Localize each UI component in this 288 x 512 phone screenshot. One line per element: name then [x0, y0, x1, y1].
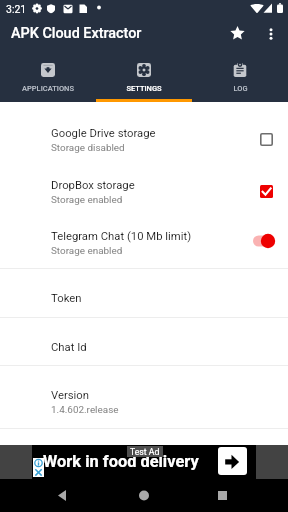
button[interactable]: Recents [208, 479, 236, 512]
staticText: Version [51, 389, 90, 402]
staticText: APPLICATIONS [22, 84, 74, 93]
button[interactable]: Telegram Chat (10 Mb limit) [0, 205, 288, 268]
button[interactable]: Google Drive storage [0, 102, 288, 154]
staticText: Telegram Chat (10 Mb limit) [51, 230, 192, 243]
staticText: SETTINGS [126, 84, 162, 93]
button[interactable]: More options [258, 21, 284, 47]
button[interactable]: APPLICATIONS [0, 52, 96, 102]
staticText: Test Ad [130, 447, 160, 457]
button[interactable]: DropBox storage [0, 154, 288, 205]
button[interactable]: Enabled [253, 178, 279, 204]
button[interactable]: LOG [192, 52, 288, 102]
staticText: Storage enabled [51, 245, 123, 257]
button[interactable]: Back [52, 479, 80, 512]
staticText: Work in food delivery [43, 452, 199, 471]
button[interactable]: Work in food delivery advertisement [32, 445, 256, 479]
button[interactable]: Open ad [218, 447, 247, 475]
staticText: Token [51, 292, 82, 305]
button[interactable]: Chat Id [0, 318, 288, 365]
staticText: 1.4.602.release [51, 404, 119, 416]
staticText: Google Drive storage [51, 127, 156, 140]
button[interactable]: Disabled [253, 126, 279, 152]
button[interactable]: Token [0, 269, 288, 317]
staticText: Storage enabled [51, 194, 123, 206]
staticText: Chat Id [51, 341, 87, 354]
staticText: LOG [233, 84, 248, 93]
button[interactable]: Favorite [222, 17, 252, 47]
staticText: DropBox storage [51, 179, 135, 192]
button[interactable]: Telegram chat enabled [245, 228, 279, 254]
button[interactable]: Version [0, 366, 288, 428]
staticText: APK Cloud Extractor [11, 25, 142, 42]
button[interactable]: SETTINGS [96, 52, 192, 102]
button[interactable]: Ad info [33, 458, 44, 477]
staticText: Storage disabled [51, 142, 125, 154]
button[interactable]: Home [130, 479, 158, 512]
staticText: 3:21 [6, 3, 27, 15]
